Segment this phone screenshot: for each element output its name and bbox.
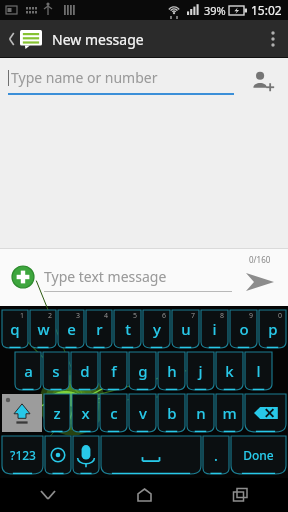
staticText: k	[225, 361, 234, 381]
button[interactable]: Send	[238, 248, 282, 306]
staticText: n	[196, 403, 206, 423]
staticText: c	[110, 403, 118, 423]
button[interactable]: v	[129, 394, 156, 432]
staticText: t	[125, 319, 131, 339]
button[interactable]: f	[100, 352, 127, 390]
staticText: d	[80, 361, 90, 381]
staticText: v	[139, 403, 147, 423]
button[interactable]: x	[72, 394, 98, 432]
staticText: 2	[48, 311, 53, 321]
button[interactable]: k	[216, 352, 243, 390]
staticText: m	[222, 403, 237, 423]
staticText: e	[67, 319, 76, 339]
staticText: 1	[20, 311, 25, 321]
button[interactable]: m	[216, 394, 243, 432]
button[interactable]: Backspace	[245, 394, 286, 432]
staticText: 39%	[204, 3, 226, 18]
button[interactable]: p	[259, 310, 286, 348]
button[interactable]: .	[203, 436, 229, 474]
staticText: 9	[249, 311, 254, 321]
button[interactable]: u	[172, 310, 199, 348]
button[interactable]: Space	[101, 436, 201, 474]
button[interactable]: z	[44, 394, 70, 432]
staticText: 8	[220, 311, 225, 321]
staticText: s	[52, 361, 60, 381]
button[interactable]: Done	[231, 436, 286, 474]
staticText: u	[181, 319, 191, 339]
button[interactable]: Home	[96, 478, 192, 512]
staticText: 5	[133, 311, 138, 321]
staticText: j	[198, 361, 203, 381]
staticText: w	[37, 319, 50, 339]
staticText: Done	[243, 447, 274, 463]
staticText: Type name or number	[11, 68, 158, 87]
staticText: 4	[104, 311, 109, 321]
staticText: g	[138, 361, 148, 381]
button[interactable]: j	[187, 352, 214, 390]
button[interactable]: y	[143, 310, 170, 348]
button[interactable]: Shift	[2, 394, 42, 432]
button[interactable]: Emoji	[45, 436, 71, 474]
staticText: p	[268, 319, 278, 339]
staticText: ?123	[10, 447, 36, 463]
button[interactable]: Type text message	[44, 263, 232, 292]
button[interactable]: c	[100, 394, 127, 432]
staticText: 7	[191, 311, 196, 321]
staticText: l	[256, 361, 261, 381]
button[interactable]: e	[58, 310, 84, 348]
button[interactable]: Add contact	[244, 63, 280, 99]
button[interactable]: a	[15, 352, 41, 390]
button[interactable]: r	[86, 310, 112, 348]
staticText: 6	[162, 311, 167, 321]
staticText: .	[214, 446, 218, 465]
button[interactable]: d	[71, 352, 98, 390]
button[interactable]: w	[30, 310, 56, 348]
staticText: o	[239, 319, 249, 339]
staticText: x	[81, 403, 90, 423]
button[interactable]: Hide keyboard	[0, 478, 96, 512]
button[interactable]: Voice input	[73, 436, 99, 474]
button[interactable]: h	[158, 352, 185, 390]
button[interactable]: b	[158, 394, 185, 432]
staticText: h	[167, 361, 177, 381]
staticText: z	[53, 403, 61, 423]
button[interactable]: Attach	[6, 260, 40, 294]
staticText: a	[24, 361, 33, 381]
button[interactable]: l	[245, 352, 272, 390]
staticText: y	[153, 319, 161, 339]
button[interactable]: t	[114, 310, 141, 348]
staticText: Type text message	[44, 267, 167, 286]
button[interactable]: More options	[258, 20, 288, 58]
button[interactable]: Type name or number	[8, 68, 234, 95]
staticText: f	[111, 361, 117, 381]
button[interactable]: g	[129, 352, 156, 390]
staticText: q	[10, 319, 20, 339]
staticText: 0/160	[249, 254, 271, 265]
button[interactable]: Recent apps	[192, 478, 288, 512]
staticText: 3	[76, 311, 81, 321]
button[interactable]: ?123	[2, 436, 43, 474]
button[interactable]: i	[201, 310, 228, 348]
staticText: New message	[52, 30, 144, 49]
button[interactable]: q	[2, 310, 28, 348]
staticText: 0	[278, 311, 283, 321]
staticText: i	[212, 319, 217, 339]
button[interactable]: n	[187, 394, 214, 432]
staticText: r	[96, 319, 103, 339]
staticText: 15:02	[251, 2, 282, 18]
button[interactable]: Back	[4, 29, 46, 49]
button[interactable]: s	[43, 352, 69, 390]
staticText: b	[167, 403, 177, 423]
button[interactable]: o	[230, 310, 257, 348]
